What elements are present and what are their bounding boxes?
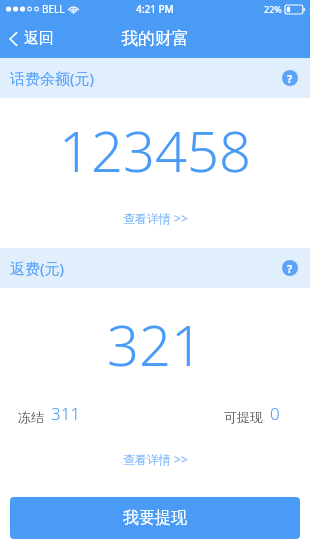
staticText: 321 bbox=[107, 306, 203, 382]
staticText: 查看详情 >> bbox=[123, 451, 188, 467]
staticText: 311 bbox=[51, 402, 81, 425]
button[interactable]: 返回 bbox=[0, 23, 66, 54]
staticText: 我要提现 bbox=[123, 508, 187, 528]
staticText: 可提现 bbox=[224, 409, 263, 425]
button[interactable]: Help bbox=[280, 258, 300, 278]
staticText: 22% bbox=[264, 3, 282, 15]
staticText: 4:21 PM bbox=[136, 2, 174, 16]
staticText: 冻结 bbox=[18, 409, 44, 425]
staticText: 返费(元) bbox=[10, 258, 65, 278]
staticText: 返回 bbox=[24, 29, 54, 48]
button[interactable]: 我要提现 bbox=[10, 497, 300, 539]
staticText: 123458 bbox=[59, 112, 251, 188]
staticText: BELL bbox=[42, 2, 65, 16]
staticText: ? bbox=[287, 71, 293, 86]
staticText: 我的财富 bbox=[121, 28, 189, 49]
staticText: 查看详情 >> bbox=[123, 210, 188, 226]
button[interactable]: 查看详情 >> bbox=[113, 206, 198, 230]
staticText: 话费余额(元) bbox=[10, 68, 95, 88]
button[interactable]: Help bbox=[280, 68, 300, 88]
button[interactable]: 查看详情 >> bbox=[113, 447, 198, 471]
staticText: 0 bbox=[270, 402, 280, 425]
staticText: ? bbox=[287, 261, 293, 276]
